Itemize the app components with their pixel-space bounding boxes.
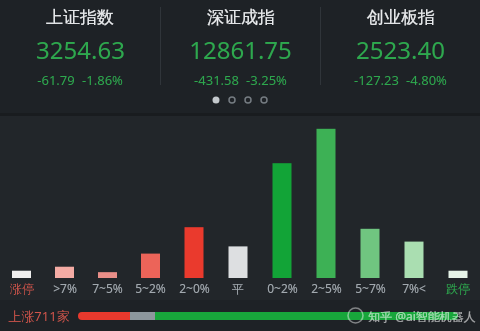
button[interactable]: 深证成指 [161,0,320,92]
button[interactable] [436,116,480,278]
staticText: 5~2% [135,280,166,296]
button[interactable] [348,116,392,278]
staticText: -127.23 [354,71,399,89]
staticText: >7% [53,280,77,296]
staticText: 12861.75 [189,33,292,66]
staticText: -3.25% [246,71,287,89]
button[interactable]: 上证指数 [0,0,160,92]
staticText: -61.79 [37,71,75,89]
button[interactable] [260,116,304,278]
button[interactable] [216,116,260,278]
staticText: 2~5% [311,280,342,296]
button[interactable] [129,116,172,278]
staticText: 7%< [402,280,426,296]
button[interactable] [172,116,216,278]
staticText: -1.86% [82,71,123,89]
button[interactable] [304,116,348,278]
staticText: 3254.63 [36,33,125,66]
staticText: 5~7% [355,280,386,296]
other: Logo [347,307,364,324]
staticText: 7~5% [92,280,123,296]
staticText: -4.80% [406,71,447,89]
button[interactable] [43,116,86,278]
staticText: 2523.40 [356,33,445,66]
staticText: 平 [232,281,244,296]
button[interactable] [0,116,43,278]
staticText: 深证成指 [207,7,275,28]
staticText: 上涨711家 [8,307,70,325]
button[interactable] [86,116,129,278]
staticText: 涨停 [10,281,34,296]
staticText: 0~2% [267,280,298,296]
staticText: 知乎 @ai智能机器人 [368,308,476,324]
staticText: 上证指数 [46,7,114,28]
button[interactable] [392,116,436,278]
staticText: 创业板指 [367,7,435,28]
staticText: -431.58 [194,71,239,89]
staticText: 2~0% [179,280,210,296]
button[interactable]: 创业板指 [321,0,480,92]
staticText: 跌停 [446,281,470,296]
button[interactable] [78,312,458,320]
